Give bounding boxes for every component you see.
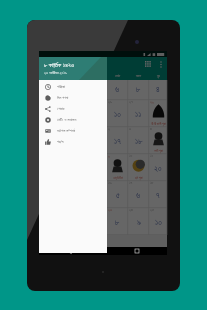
button[interactable]: অ্যাপস সম্পর্কে	[39, 125, 107, 136]
button[interactable]: পছন্দ	[39, 136, 107, 147]
staticText: ৫	[116, 192, 120, 200]
button[interactable]: ৮	[128, 80, 149, 100]
staticText: ২৫	[150, 208, 154, 212]
staticText: ৪	[156, 86, 160, 94]
button[interactable]: ৪	[149, 80, 167, 100]
button[interactable]: ৬	[107, 80, 128, 100]
staticText: ২৭	[129, 100, 133, 104]
button[interactable]: Back	[65, 247, 73, 255]
staticText: ১৮	[150, 181, 154, 185]
button[interactable]: ৪	[149, 127, 167, 154]
staticText: ২	[108, 127, 110, 131]
button[interactable]: রেটিং ও মতামত	[39, 114, 107, 125]
staticText: শ্রী শ্রী কালী পূজা	[151, 122, 166, 126]
staticText: ৯	[137, 219, 141, 227]
staticText: ১৭	[114, 138, 121, 146]
button[interactable]: পঞ্জিকা	[39, 81, 107, 92]
staticText: ২৪	[129, 208, 133, 212]
staticText: পছন্দ	[57, 140, 64, 144]
staticText: রেটিং ও মতামত	[57, 117, 77, 122]
button[interactable]: Recents	[133, 247, 141, 255]
staticText: ২৩	[108, 208, 113, 212]
staticText: ২৬	[108, 100, 113, 104]
staticText: পঞ্জিকা	[57, 85, 66, 89]
staticText: ৮ কার্তিক ১৪২৩	[44, 61, 75, 69]
button[interactable]: ১৮	[149, 181, 167, 208]
button[interactable]: ২৭	[128, 100, 149, 127]
staticText: ৮	[136, 86, 141, 94]
staticText: ভ্রাতৃদ্বিতীয়া	[113, 177, 123, 180]
button[interactable]: ২৫	[149, 208, 167, 235]
button[interactable]: ১৬	[107, 181, 128, 208]
button[interactable]: শেয়ার	[39, 103, 107, 114]
button[interactable]: ৯	[107, 154, 128, 181]
staticText: ১১	[135, 111, 142, 119]
button[interactable]: ২৯	[149, 100, 167, 127]
button[interactable]: ১১	[149, 154, 167, 181]
button[interactable]: ১০	[128, 154, 149, 181]
staticText: ২০	[154, 165, 162, 173]
staticText: ছট পূজা	[135, 176, 143, 180]
staticText: ১৭	[129, 181, 133, 185]
staticText: ২৩ অক্টোবর ২০১৬	[44, 70, 68, 75]
staticText: ১৮	[135, 138, 143, 146]
staticText: ৮	[115, 219, 120, 227]
staticText: ২৯	[150, 100, 154, 104]
button[interactable]: ২৩	[107, 208, 128, 235]
staticText: ১০	[155, 219, 162, 227]
button[interactable]: দিন গণনা	[39, 92, 107, 103]
button[interactable]: ২	[107, 127, 128, 154]
button[interactable]: ২৪	[128, 208, 149, 235]
staticText: লক্ষী পূজা	[154, 149, 163, 153]
staticText: বুধ	[157, 74, 160, 77]
staticText: সোম	[115, 74, 121, 77]
staticText: অ্যাপস সম্পর্কে	[57, 128, 76, 133]
button[interactable]: Home	[99, 247, 107, 255]
staticText: দিন গণনা	[57, 95, 69, 100]
staticText: ৬	[136, 192, 141, 200]
staticText: ৯	[108, 154, 110, 158]
button[interactable]: ২৬	[107, 100, 128, 127]
button[interactable]: More options	[155, 58, 167, 70]
staticText: ১৬	[108, 181, 112, 185]
staticText: ৪	[150, 127, 152, 131]
staticText: মঙ্গল	[136, 74, 142, 77]
staticText: ১১	[150, 154, 154, 158]
staticText: ৬	[115, 86, 120, 94]
button[interactable]: ১৭	[128, 181, 149, 208]
button[interactable]: ৩	[128, 127, 149, 154]
staticText: ১০	[129, 154, 133, 158]
staticText: ৩	[129, 127, 132, 131]
staticText: শেয়ার	[57, 107, 65, 111]
button[interactable]: Grid view	[141, 57, 155, 71]
staticText: ১০	[114, 111, 121, 119]
staticText: ৭	[156, 192, 160, 200]
